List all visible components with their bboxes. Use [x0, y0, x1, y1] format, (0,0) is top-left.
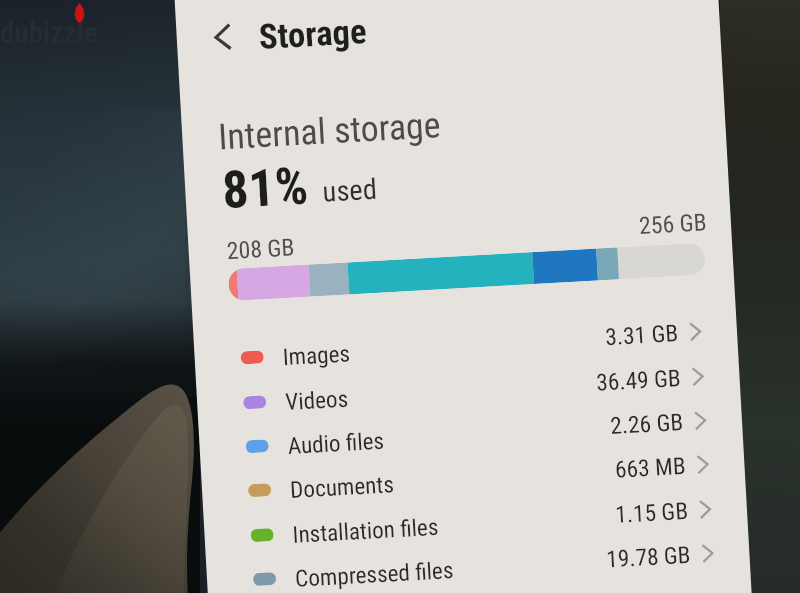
button[interactable]: Documents — [201, 445, 746, 519]
staticText: 36.49 GB — [560, 364, 681, 398]
staticText: 256 GB — [638, 208, 708, 240]
button[interactable]: Compressed files — [206, 533, 751, 593]
staticText: Installation files — [292, 513, 439, 548]
staticText: Audio files — [287, 427, 385, 459]
staticText: Compressed files — [294, 556, 455, 592]
staticText: 1.15 GB — [567, 497, 689, 530]
staticText: Documents — [289, 470, 395, 503]
staticText: 19.78 GB — [570, 541, 691, 574]
staticText: Storage — [258, 11, 368, 58]
staticText: 2.26 GB — [562, 408, 684, 442]
staticText: Internal storage — [217, 104, 442, 158]
button[interactable]: Audio files — [199, 401, 743, 475]
staticText: Images — [282, 339, 351, 370]
staticText: 663 MB — [565, 452, 686, 486]
staticText: used — [322, 173, 378, 209]
button[interactable]: Videos — [196, 357, 741, 431]
staticText: Videos — [284, 385, 349, 415]
staticText: 3.31 GB — [557, 319, 679, 353]
button[interactable]: Installation files — [204, 490, 748, 564]
button[interactable]: Images — [194, 312, 738, 386]
staticText: dubizzle — [0, 16, 98, 50]
staticText: 81% — [221, 156, 310, 221]
staticText: 208 GB — [226, 233, 295, 265]
button[interactable]: Back — [200, 14, 246, 60]
